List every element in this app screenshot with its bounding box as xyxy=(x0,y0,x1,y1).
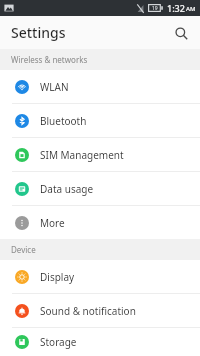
staticText: SIM Management xyxy=(40,148,124,162)
button[interactable]: Display xyxy=(0,260,200,293)
staticText: Wireless & networks xyxy=(11,54,88,65)
staticText: Bluetooth xyxy=(40,114,87,128)
staticText: Storage xyxy=(40,335,77,349)
button[interactable]: More xyxy=(0,206,200,239)
staticText: Settings xyxy=(11,23,66,42)
staticText: 1:32 xyxy=(167,2,185,14)
button[interactable]: Search xyxy=(169,21,193,45)
staticText: Display xyxy=(40,270,75,284)
staticText: More xyxy=(40,216,65,230)
staticText: Sound & notification xyxy=(40,304,136,318)
staticText: Device xyxy=(11,244,36,255)
staticText: Data usage xyxy=(40,182,94,196)
button[interactable]: Data usage xyxy=(0,172,200,205)
staticText: 19 xyxy=(152,5,158,12)
staticText: WLAN xyxy=(40,80,69,94)
staticText: AM xyxy=(186,5,196,13)
button[interactable]: WLAN xyxy=(0,70,200,103)
button[interactable]: Bluetooth xyxy=(0,104,200,137)
button[interactable]: SIM Management xyxy=(0,138,200,171)
button[interactable]: Sound & notification xyxy=(0,294,200,327)
button[interactable]: Storage xyxy=(0,328,200,356)
